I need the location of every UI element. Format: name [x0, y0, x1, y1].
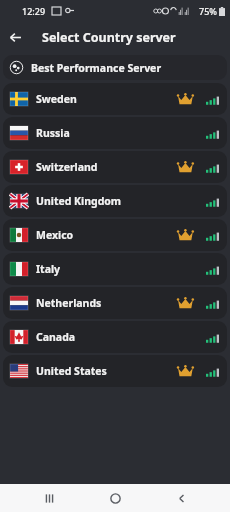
staticText: Netherlands	[36, 296, 102, 310]
button[interactable]: Home	[98, 484, 132, 512]
button[interactable]: Mexico	[3, 219, 227, 251]
button[interactable]: Best Performance Server	[3, 55, 227, 80]
staticText: Switzerland	[36, 160, 98, 174]
button[interactable]: United Kingdom	[3, 185, 227, 217]
button[interactable]: United States	[3, 355, 227, 387]
button[interactable]: Switzerland	[3, 151, 227, 183]
button[interactable]: Netherlands	[3, 287, 227, 319]
button[interactable]: Russia	[3, 117, 227, 149]
button[interactable]: Italy	[3, 253, 227, 285]
staticText: Mexico	[36, 228, 74, 242]
staticText: Sweden	[36, 92, 77, 106]
staticText: Select Country server	[42, 29, 176, 46]
button[interactable]: Back	[164, 484, 198, 512]
button[interactable]: Sweden	[3, 83, 227, 115]
staticText: Italy	[36, 262, 61, 276]
staticText: 75%	[199, 5, 217, 17]
staticText: United Kingdom	[36, 194, 122, 208]
staticText: Best Performance Server	[31, 61, 162, 75]
button[interactable]: Recents	[32, 484, 66, 512]
staticText: United States	[36, 364, 107, 378]
button[interactable]: Back	[0, 22, 30, 52]
staticText: 12:29	[22, 5, 46, 17]
staticText: Russia	[36, 126, 70, 140]
button[interactable]: Canada	[3, 321, 227, 353]
staticText: Canada	[36, 330, 76, 344]
